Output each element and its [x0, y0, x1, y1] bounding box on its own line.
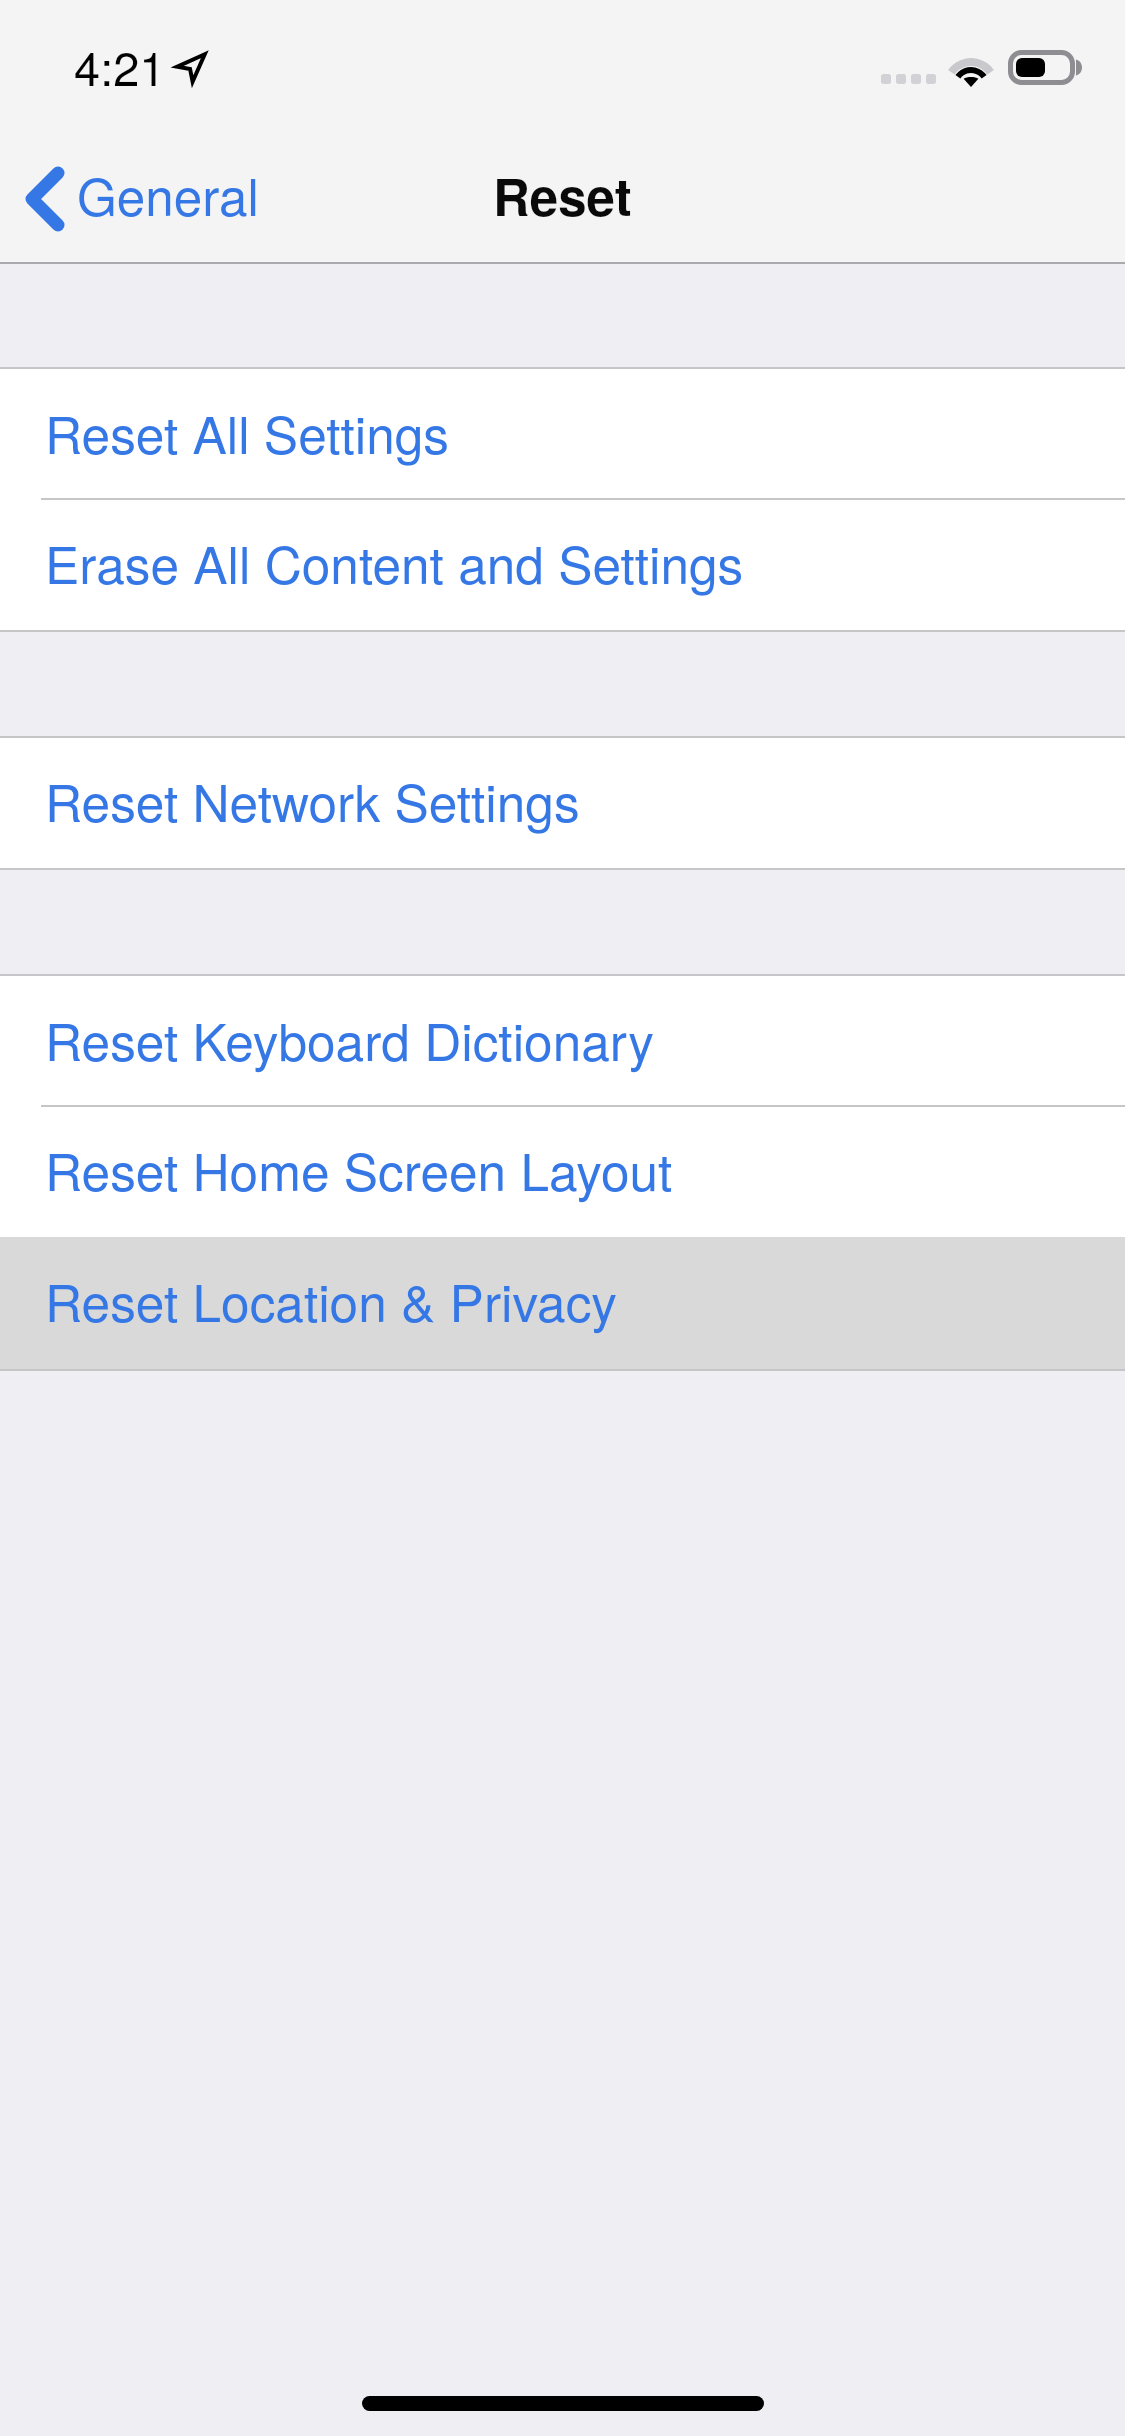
staticText: 4:21: [74, 32, 166, 99]
button[interactable]: Reset Keyboard Dictionary: [0, 976, 1125, 1107]
staticText: Reset: [493, 159, 632, 232]
staticText: Reset Location & Privacy: [45, 1263, 618, 1337]
staticText: Reset Home Screen Layout: [45, 1132, 673, 1206]
staticText: Reset Network Settings: [45, 763, 580, 837]
staticText: General: [77, 157, 259, 230]
button[interactable]: Reset Home Screen Layout: [0, 1107, 1125, 1237]
button[interactable]: Reset All Settings: [0, 369, 1125, 500]
button[interactable]: Erase All Content and Settings: [0, 500, 1125, 630]
staticText: Reset All Settings: [45, 395, 450, 469]
button[interactable]: Reset Location & Privacy: [0, 1237, 1125, 1369]
staticText: Reset Keyboard Dictionary: [45, 1002, 654, 1076]
button[interactable]: Back to General: [0, 152, 283, 234]
button[interactable]: Reset Network Settings: [0, 738, 1125, 868]
staticText: Erase All Content and Settings: [45, 525, 744, 599]
